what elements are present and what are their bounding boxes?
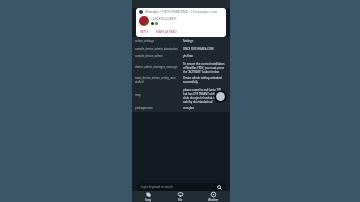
staticText: sample_device_admin_description xyxy=(135,47,178,51)
staticText: Song xyxy=(145,198,152,202)
staticText: sample_device_admin xyxy=(135,54,163,58)
staticText: com.ytcs xyxy=(183,106,195,110)
button[interactable]: action_settings xyxy=(132,37,230,45)
staticText: of NextRec FREE, you must press xyxy=(183,66,225,70)
button[interactable]: sample_device_admin_description xyxy=(132,45,230,53)
button[interactable]: Song xyxy=(132,191,164,202)
button[interactable]: device_admin_manager_message xyxy=(132,60,230,75)
staticText: yts flow xyxy=(183,54,193,58)
button[interactable]: REPLY xyxy=(140,30,149,34)
button[interactable]: MARK AS READ xyxy=(156,30,177,34)
staticText: Input keyword to search xyxy=(141,185,173,189)
staticText: device_admin_manager_message xyxy=(135,65,178,69)
staticText: stalled xyxy=(135,80,144,84)
button[interactable]: WhatsApp • YTECH-PHANTOMIC • 10 messages… xyxy=(136,8,226,37)
staticText: Settings xyxy=(183,39,194,43)
other: Weather xyxy=(211,192,216,197)
staticText: WhatsApp • YTECH-PHANTOMIC • 10 messages… xyxy=(145,10,217,14)
staticText: Weather xyxy=(208,198,219,202)
staticText: +234 810 5228957 xyxy=(151,17,177,21)
staticText: chuk olu njas hd sachat na xyxy=(183,96,217,100)
staticText: but has OTP INSANT obhi xyxy=(183,92,215,96)
staticText: To ensure the correct installation xyxy=(183,62,225,66)
button[interactable]: toast_device_admin_acting_unin xyxy=(132,74,230,86)
staticText: please cancel to exit lunto 100 xyxy=(183,88,221,92)
staticText: toast_device_admin_acting_unin xyxy=(135,76,176,80)
staticText: action_settings xyxy=(135,39,154,43)
staticText: the "ACTIVATE" button below xyxy=(183,70,220,74)
staticText: ONLY FOR SHAREit.COM xyxy=(183,47,214,51)
button[interactable]: File xyxy=(164,191,197,202)
button[interactable]: Input keyword to search xyxy=(137,183,225,191)
staticText: File xyxy=(178,198,183,202)
button[interactable]: sample_device_admin xyxy=(132,52,230,60)
button[interactable]: Weather xyxy=(197,191,230,202)
other: Search xyxy=(217,185,222,190)
button[interactable]: msg xyxy=(132,86,230,105)
staticText: packagename xyxy=(135,106,153,110)
other: Song xyxy=(146,192,151,197)
button[interactable]: packagename xyxy=(132,104,230,112)
other: File xyxy=(178,192,183,197)
staticText: Device admin setting activated xyxy=(183,76,222,80)
staticText: nahi by aki mbudashud xyxy=(183,100,213,104)
staticText: msg xyxy=(135,93,141,97)
staticText: successfully xyxy=(183,80,198,84)
